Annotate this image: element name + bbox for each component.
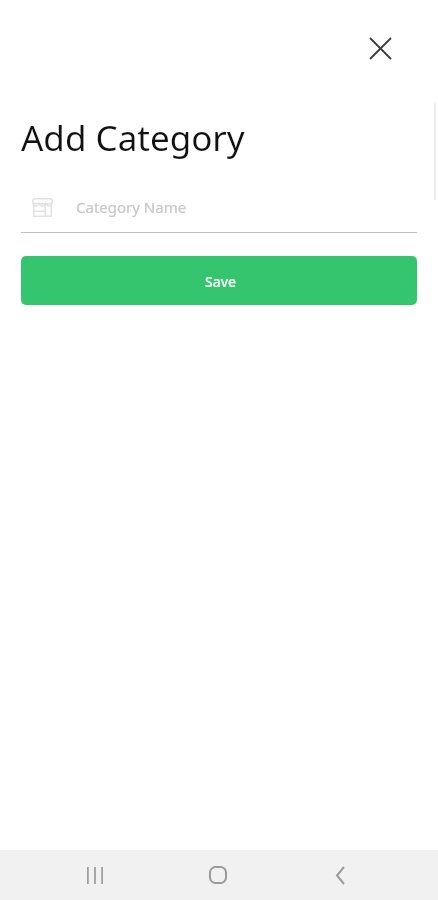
button[interactable]: Back xyxy=(318,853,362,897)
staticText: Add Category xyxy=(21,114,245,162)
button[interactable]: Recent apps xyxy=(73,853,117,897)
button[interactable]: Save xyxy=(21,256,417,305)
button[interactable]: Close xyxy=(358,26,402,70)
button[interactable]: Home xyxy=(196,853,240,897)
button[interactable]: Category Name xyxy=(21,188,417,233)
staticText: Save xyxy=(205,272,237,291)
staticText: Category Name xyxy=(76,197,187,217)
